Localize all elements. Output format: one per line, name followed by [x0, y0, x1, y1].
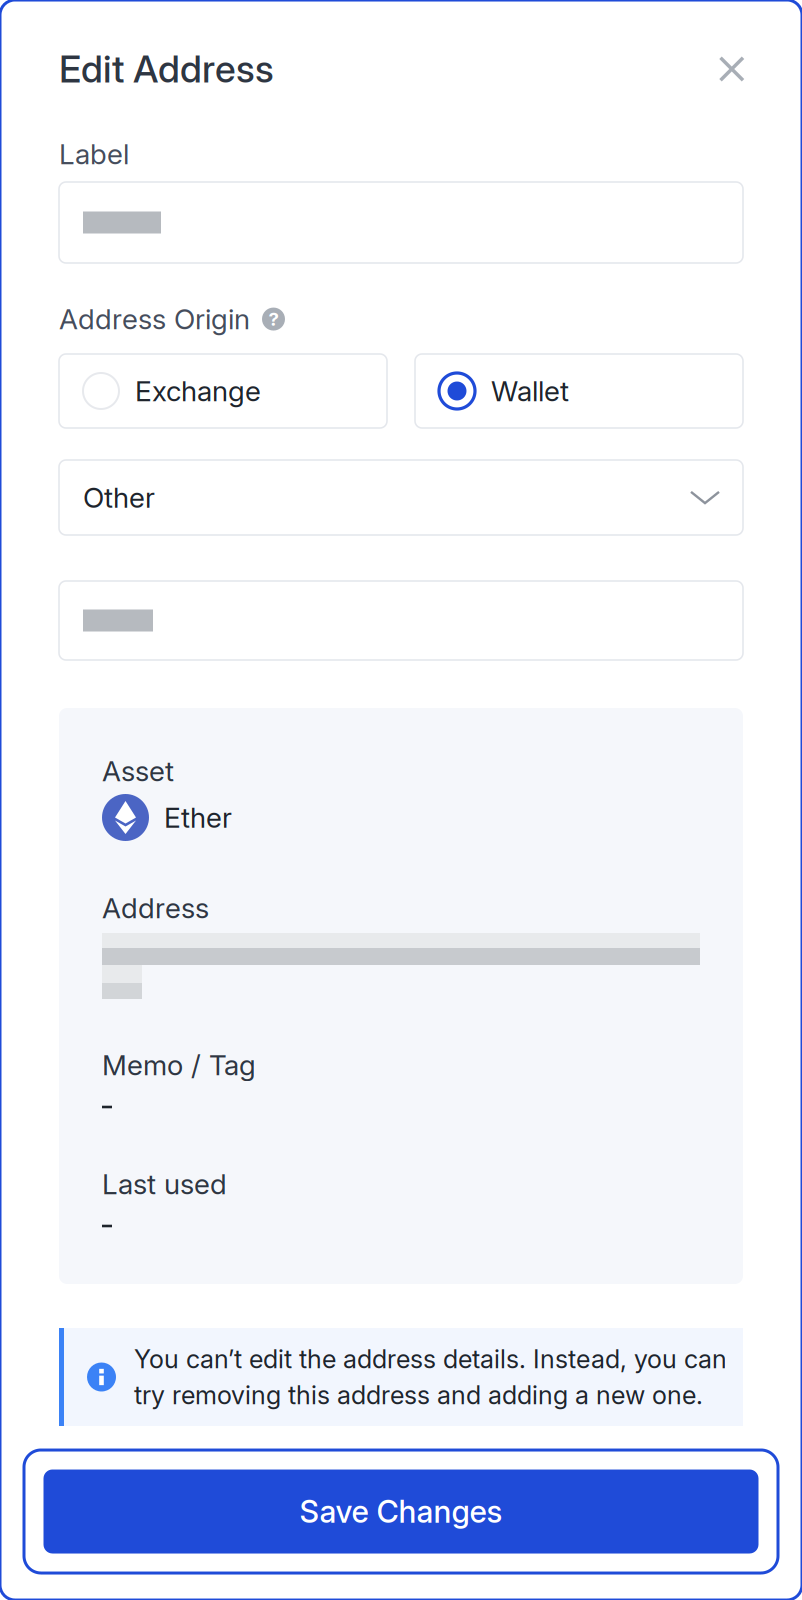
staticText: Memo / Tag — [102, 1048, 256, 1082]
staticText: Edit Address — [59, 46, 274, 92]
staticText: Other — [83, 481, 155, 514]
button[interactable]: Other — [59, 460, 743, 535]
button[interactable]: Close — [720, 45, 743, 93]
staticText: Exchange — [135, 374, 261, 408]
staticText: Label — [59, 137, 129, 171]
staticText: Wallet — [491, 374, 569, 408]
button[interactable]: Save Changes — [24, 1450, 778, 1573]
staticText: ? — [268, 308, 278, 330]
staticText: Last used — [102, 1167, 227, 1201]
staticText: You can’t edit the address details. Inst… — [134, 1344, 727, 1374]
staticText: Address — [102, 891, 209, 925]
staticText: Address Origin — [59, 302, 250, 336]
staticText: try removing this address and adding a n… — [134, 1380, 703, 1410]
button[interactable]: Wallet — [415, 354, 743, 428]
staticText: Asset — [102, 754, 174, 788]
staticText: Save Changes — [299, 1493, 502, 1530]
staticText: Ether — [164, 801, 232, 834]
button[interactable]: Exchange — [59, 354, 387, 428]
